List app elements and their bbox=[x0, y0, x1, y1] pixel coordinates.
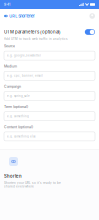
staticText: e.g. something bbox=[7, 114, 29, 118]
staticText: Source bbox=[4, 44, 15, 48]
button[interactable]: Toggle UTM parameters bbox=[85, 29, 95, 35]
staticText: Medium bbox=[4, 64, 17, 68]
staticText: e.g. something else bbox=[7, 135, 36, 138]
staticText: URL Shortener bbox=[9, 14, 34, 18]
staticText: Add UTM to track web traffic in analytic… bbox=[4, 37, 67, 41]
staticText: Campaign bbox=[4, 84, 21, 89]
staticText: Shorten bbox=[4, 173, 22, 179]
button[interactable]: Account bbox=[89, 13, 95, 19]
staticText: UTM parameters (optional) bbox=[4, 29, 61, 35]
staticText: Content (optional) bbox=[4, 125, 33, 129]
staticText: Shorten your URL so it's ready to be sha… bbox=[4, 181, 61, 188]
staticText: e.g. cpc, banner, email bbox=[7, 74, 43, 77]
staticText: e.g. google_newsletter bbox=[7, 54, 41, 57]
staticText: e.g. spring_sale bbox=[7, 94, 30, 98]
staticText: Term (optional) bbox=[4, 105, 28, 109]
staticText: 9:41 bbox=[4, 3, 10, 6]
